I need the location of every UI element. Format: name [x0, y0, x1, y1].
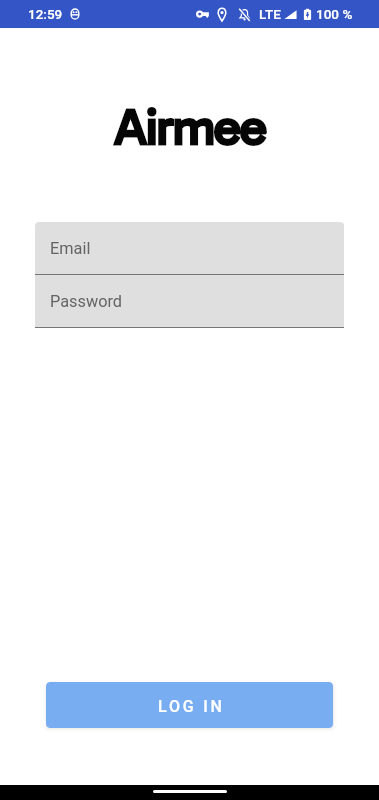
- button[interactable]: Password: [35, 275, 344, 327]
- staticText: 100 %: [316, 6, 353, 22]
- staticText: 12:59: [28, 6, 63, 22]
- button[interactable]: Email: [35, 222, 344, 274]
- button[interactable]: LOG IN: [46, 682, 333, 728]
- staticText: LOG IN: [158, 697, 225, 716]
- staticText: Airmee: [114, 97, 266, 157]
- staticText: Password: [50, 292, 122, 311]
- staticText: LTE: [259, 6, 281, 22]
- staticText: Email: [50, 239, 91, 258]
- staticText: Airmee: [114, 97, 266, 157]
